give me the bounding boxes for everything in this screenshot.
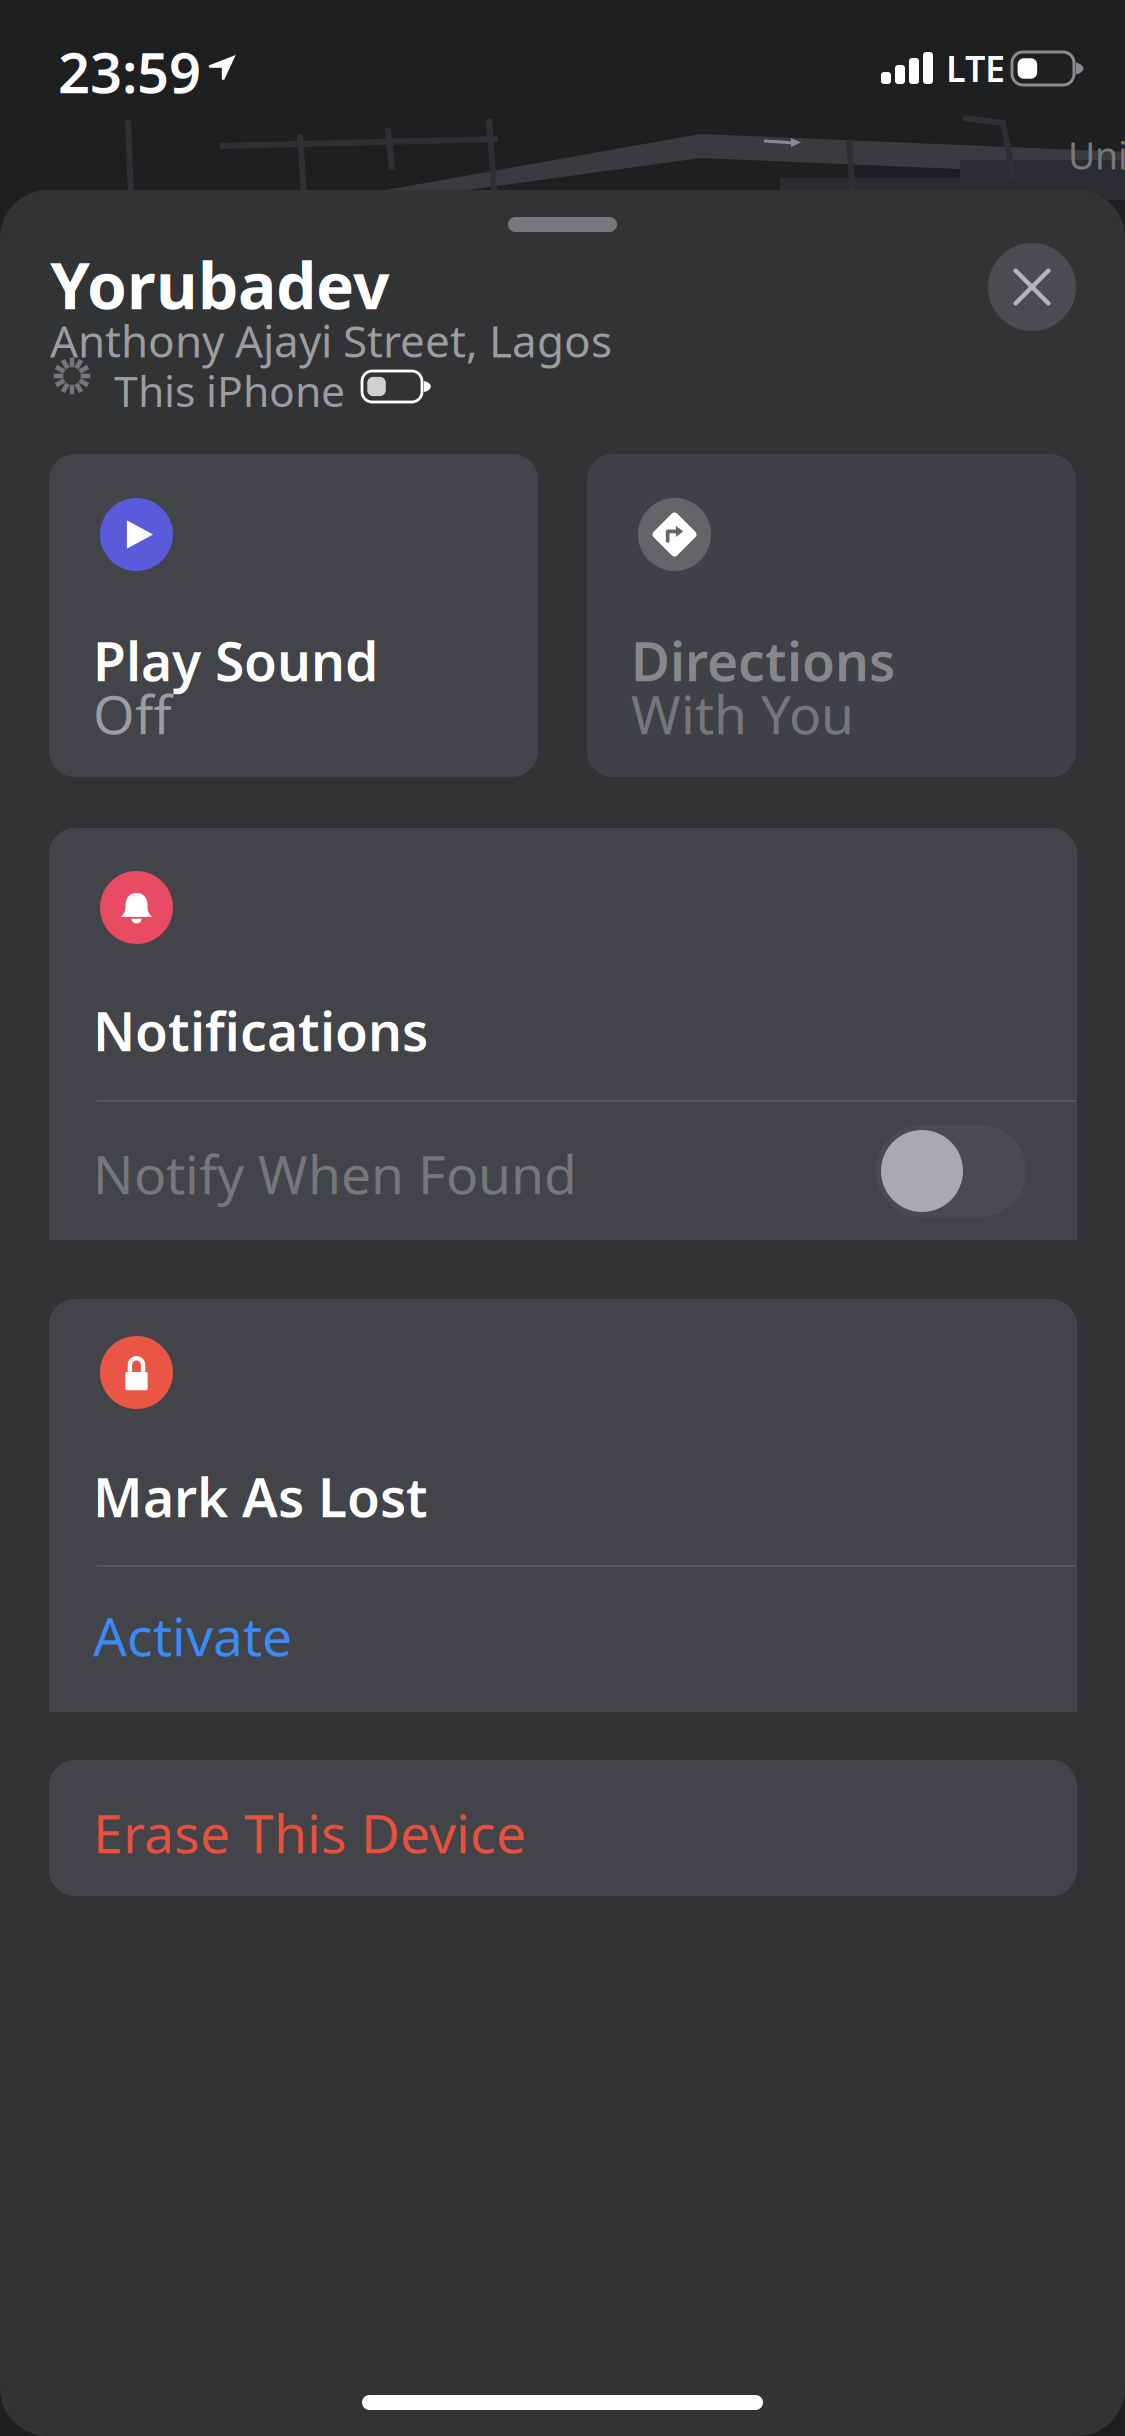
staticText: Yorubadev <box>50 242 390 327</box>
staticText: LTE <box>946 44 1005 92</box>
button[interactable]: Erase This Device <box>49 1760 1077 1896</box>
staticText: This iPhone <box>114 362 345 419</box>
button[interactable]: Play Sound <box>49 454 538 777</box>
staticText: Erase This Device <box>93 1797 526 1868</box>
button[interactable]: Notify When Found <box>49 1102 1077 1240</box>
button[interactable]: Directions <box>587 454 1076 777</box>
button[interactable]: Close <box>988 243 1076 331</box>
staticText: Activate <box>93 1600 292 1671</box>
staticText: Anthony Ajayi Street, Lagos <box>50 311 612 370</box>
staticText: Mark As Lost <box>93 1461 428 1532</box>
staticText: Notify When Found <box>93 1138 577 1209</box>
staticText: 23:59 <box>58 34 201 109</box>
staticText: Directions <box>631 625 895 696</box>
staticText: Play Sound <box>93 625 378 696</box>
staticText: Off <box>93 678 172 749</box>
staticText: Univ <box>1068 130 1125 180</box>
staticText: With You <box>631 678 854 749</box>
button[interactable]: Activate <box>49 1567 1077 1712</box>
staticText: Notifications <box>93 995 428 1066</box>
